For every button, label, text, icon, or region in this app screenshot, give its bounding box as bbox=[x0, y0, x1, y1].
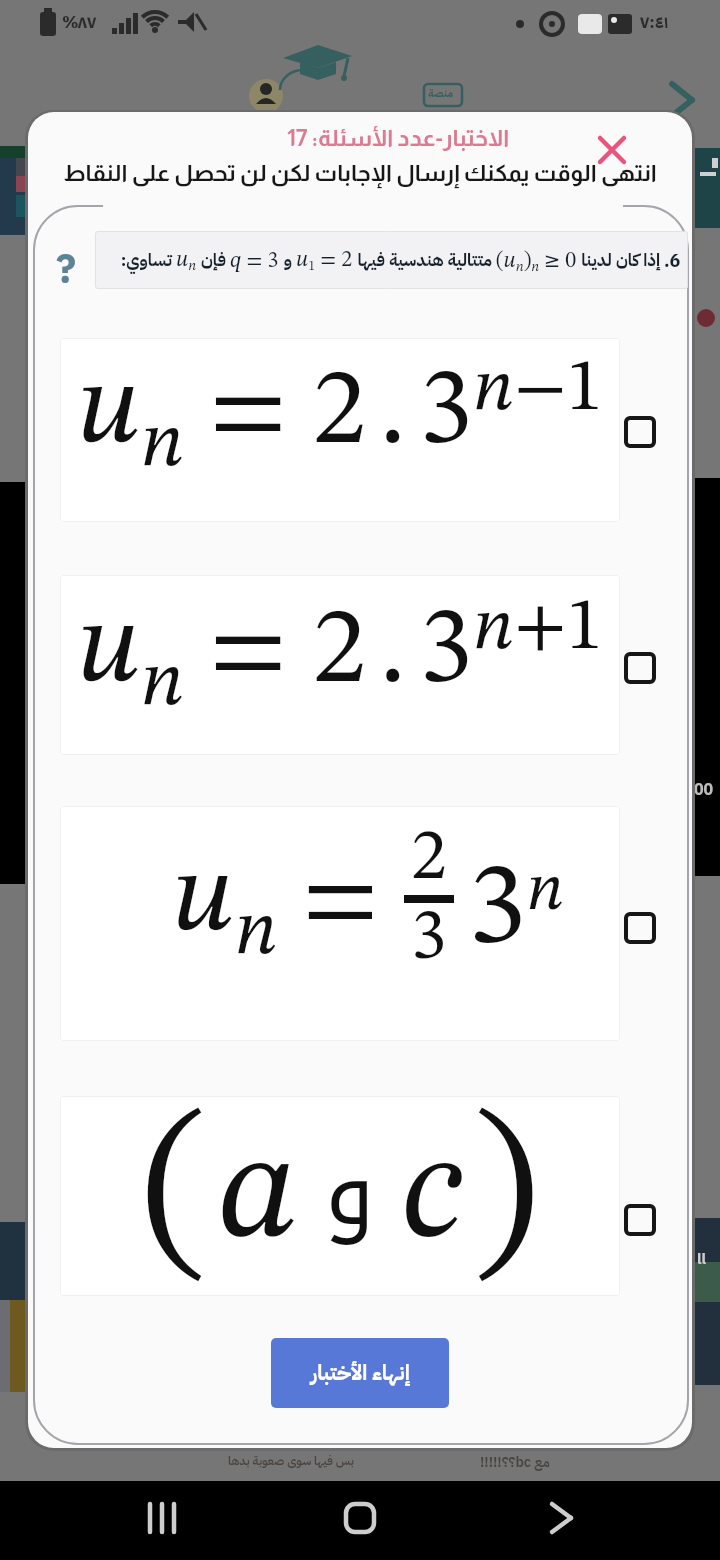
button[interactable]: إنهاء الأختبار bbox=[271, 1338, 449, 1408]
staticText: %٨٧ bbox=[62, 10, 97, 35]
staticText: ll bbox=[697, 1248, 706, 1271]
staticText: 3n bbox=[468, 851, 564, 969]
staticText: ? bbox=[56, 240, 76, 300]
button[interactable] bbox=[624, 1204, 656, 1236]
staticText: 3 bbox=[411, 903, 447, 975]
staticText: إذا كان لدينا bbox=[577, 248, 664, 273]
staticText: .6 bbox=[664, 247, 681, 274]
staticText: و bbox=[279, 248, 296, 273]
staticText: انتهى الوقت يمكنك إرسال الإجابات لكن لن … bbox=[28, 160, 692, 186]
button[interactable]: un = 2 . 3n+1 bbox=[60, 575, 620, 755]
staticText: un = bbox=[172, 845, 404, 971]
staticText: ) bbox=[473, 1101, 539, 1291]
staticText: un = 2 . 3n−1 bbox=[77, 353, 603, 483]
staticText: c bbox=[401, 1121, 463, 1271]
staticText: 00 bbox=[694, 778, 714, 802]
button[interactable]: un = 2 . 3n−1 bbox=[60, 338, 620, 522]
staticText: (un)n ≥ 0 bbox=[496, 248, 577, 274]
button[interactable] bbox=[624, 912, 656, 944]
staticText: منصة bbox=[428, 85, 454, 102]
staticText: و bbox=[325, 1111, 375, 1278]
staticText: فإن bbox=[197, 248, 230, 273]
staticText: !!!!!؟؟bc مع bbox=[480, 1452, 550, 1473]
button[interactable] bbox=[592, 130, 632, 170]
staticText: إنهاء الأختبار bbox=[311, 1357, 410, 1389]
staticText: الاختبار-عدد الأسئلة: 17 bbox=[66, 125, 692, 151]
staticText: un bbox=[176, 249, 197, 273]
staticText: u1 = 2 bbox=[296, 249, 353, 273]
staticText: q = 3 bbox=[230, 250, 279, 272]
staticText: ٧:٤١ bbox=[640, 10, 669, 35]
staticText: بس فيها سوى صعوبة بدها bbox=[228, 1452, 354, 1470]
button[interactable] bbox=[624, 416, 656, 448]
staticText: 2 bbox=[411, 823, 447, 895]
staticText: a bbox=[218, 1121, 299, 1271]
staticText: un = 2 . 3n+1 bbox=[77, 592, 603, 722]
staticText: ( bbox=[142, 1101, 208, 1291]
button[interactable]: ( bbox=[60, 1096, 620, 1296]
button[interactable]: un = bbox=[60, 806, 620, 1041]
staticText: تساوي: bbox=[120, 248, 176, 273]
button[interactable] bbox=[624, 652, 656, 684]
staticText: متتالية هندسية فيها bbox=[353, 248, 496, 273]
